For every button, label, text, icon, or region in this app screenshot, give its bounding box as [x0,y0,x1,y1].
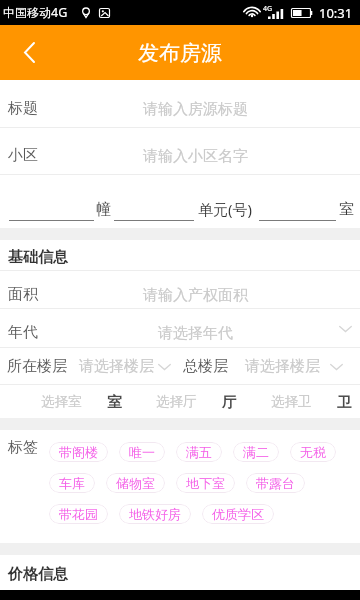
staticText: 优质学区 [212,506,264,522]
staticText: 请选择年代 [158,324,233,343]
staticText: 选择室 [41,393,82,410]
button[interactable]: 选择室 [41,385,122,418]
button[interactable]: 储物室 [106,473,165,493]
button[interactable]: 总楼层 [180,348,360,385]
button[interactable]: 满五 [176,442,222,462]
staticText: 基础信息 [8,248,68,267]
staticText: 标题 [8,99,38,118]
staticText: 单元(号) [198,199,253,219]
button[interactable]: 车库 [49,473,95,493]
button[interactable] [259,205,336,221]
staticText: 带阁楼 [59,444,98,460]
staticText: 室 [107,393,122,411]
staticText: 请选择楼层 [79,357,154,376]
staticText: 选择卫 [271,393,312,410]
staticText: 发布房源 [138,40,222,66]
staticText: 所在楼层 [7,357,67,376]
staticText: 标签 [8,438,38,457]
staticText: 小区 [8,146,38,165]
staticText: 年代 [8,323,38,342]
staticText: 唯一 [129,444,155,460]
staticText: 满五 [186,444,212,460]
staticText: 中国移动 [3,5,51,20]
staticText: 车库 [59,475,85,491]
button[interactable]: 带露台 [246,473,305,493]
button[interactable]: 优质学区 [202,504,274,524]
button[interactable]: 选择卫 [271,385,352,418]
button[interactable]: 地下室 [176,473,235,493]
button[interactable]: 带阁楼 [49,442,108,462]
button[interactable]: 年代 [0,309,360,348]
staticText: 地铁好房 [129,506,181,522]
staticText: 带露台 [256,475,295,491]
staticText: 储物室 [116,475,155,491]
staticText: 带花园 [59,506,98,522]
staticText: 卫 [337,393,352,411]
button[interactable]: 选择厅 [156,385,237,418]
button[interactable]: 唯一 [119,442,165,462]
button[interactable]: 所在楼层 [0,348,180,385]
staticText: 面积 [8,285,38,304]
button[interactable]: 标题 [0,80,360,128]
button[interactable]: 地铁好房 [119,504,191,524]
staticText: 室 [339,200,354,219]
staticText: 请输入产权面积 [143,286,248,305]
staticText: 地下室 [186,475,225,491]
staticText: 总楼层 [183,357,228,376]
button[interactable]: 小区 [0,128,360,175]
staticText: 价格信息 [8,565,68,584]
button[interactable]: Back [0,25,48,80]
staticText: 4G [51,4,68,21]
button[interactable] [114,205,194,221]
staticText: 请选择楼层 [245,357,320,376]
button[interactable]: 无税 [290,442,336,462]
staticText: 厅 [222,393,237,411]
staticText: 幢 [96,200,111,219]
button[interactable]: 带花园 [49,504,108,524]
staticText: 满二 [243,444,269,460]
staticText: 请输入小区名字 [143,147,248,166]
staticText: 10:31 [319,4,353,22]
staticText: 4G [263,4,273,14]
button[interactable] [9,205,94,221]
button[interactable]: 面积 [0,271,360,309]
staticText: 请输入房源标题 [143,100,248,119]
staticText: 选择厅 [156,393,197,410]
staticText: 无税 [300,444,326,460]
button[interactable]: 满二 [233,442,279,462]
